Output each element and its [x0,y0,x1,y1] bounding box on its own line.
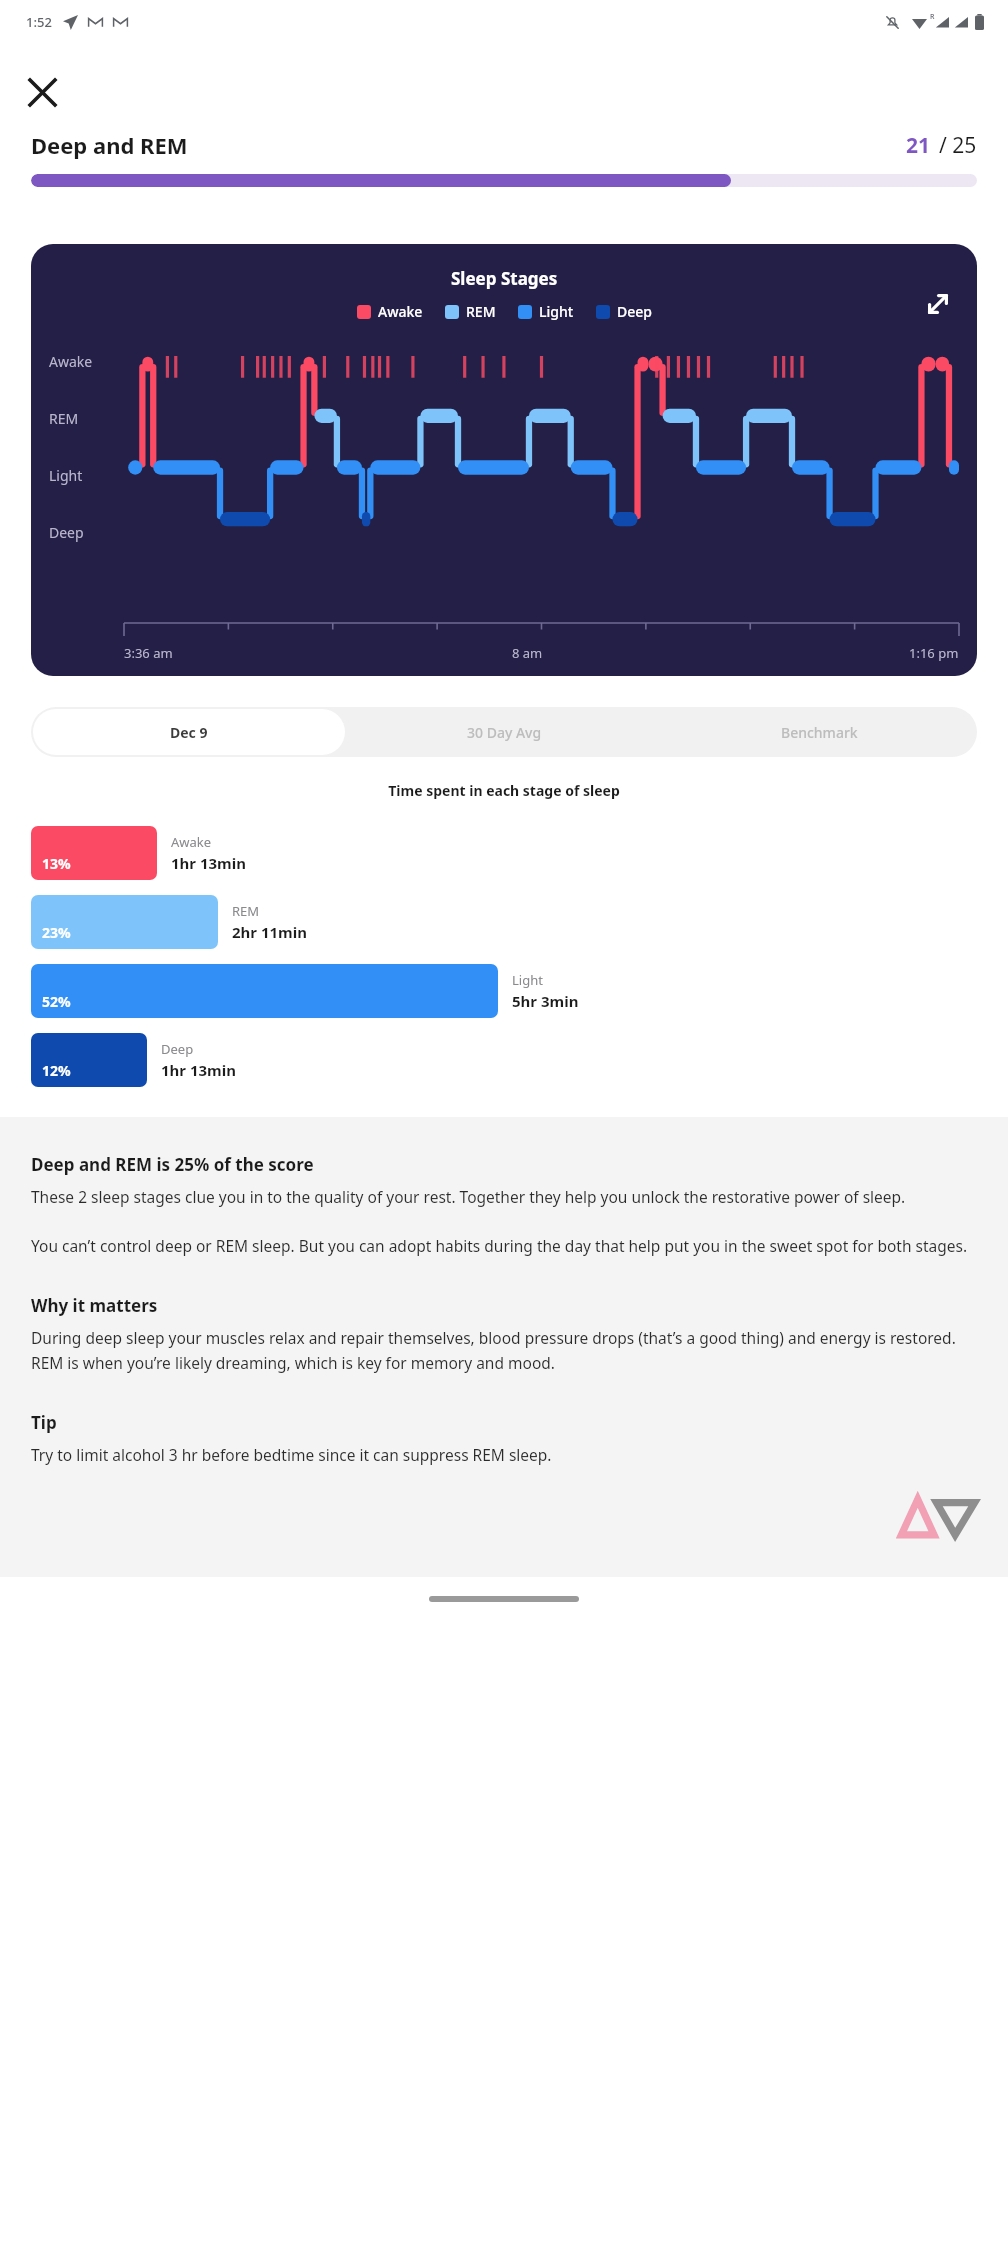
staticText: You can’t control deep or REM sleep. But… [31,1235,968,1256]
staticText: Deep [617,302,652,321]
staticText: 2hr 11min [232,922,307,942]
button[interactable]: Benchmark [662,707,977,757]
staticText: REM [49,409,79,428]
staticText: R [930,12,935,22]
staticText: Why it matters [31,1294,158,1317]
staticText: Dec 9 [170,723,208,742]
button[interactable]: 30 Day Avg [347,707,662,757]
staticText: 1:16 pm [909,644,959,662]
staticText: 5hr 3min [512,991,579,1011]
staticText: 12% [42,1061,71,1080]
staticText: During deep sleep your muscles relax and… [31,1327,977,1373]
staticText: 1:52 [26,13,52,31]
button[interactable]: Dec 9 [33,709,345,755]
staticText: Deep [49,523,84,542]
staticText: Light [49,466,83,485]
staticText: REM [466,302,496,321]
staticText: Try to limit alcohol 3 hr before bedtime… [31,1444,552,1465]
button[interactable]: Close [18,68,66,116]
staticText: 3:36 am [124,644,173,662]
staticText: 21 [906,131,931,160]
staticText: 13% [42,854,71,873]
staticText: Awake [49,352,93,371]
staticText: 1hr 13min [161,1060,236,1080]
staticText: 1hr 13min [171,853,246,873]
staticText: Awake [378,302,423,321]
staticText: Awake [171,833,212,851]
staticText: Benchmark [781,723,858,742]
staticText: Sleep Stages [451,267,558,290]
staticText: These 2 sleep stages clue you in to the … [31,1186,906,1207]
staticText: Deep [161,1040,194,1058]
staticText: Deep and REM is 25% of the score [31,1153,314,1176]
staticText: Light [539,302,574,321]
staticText: / 25 [939,131,977,160]
staticText: 30 Day Avg [467,723,542,742]
staticText: 52% [42,992,71,1011]
staticText: Deep and REM [31,130,188,160]
button[interactable]: Expand chart [916,282,960,326]
staticText: 23% [42,923,71,942]
staticText: Time spent in each stage of sleep [0,781,1008,800]
staticText: Light [512,971,543,989]
staticText: 8 am [512,644,543,662]
staticText: REM [232,902,260,920]
staticText: Tip [31,1411,57,1434]
